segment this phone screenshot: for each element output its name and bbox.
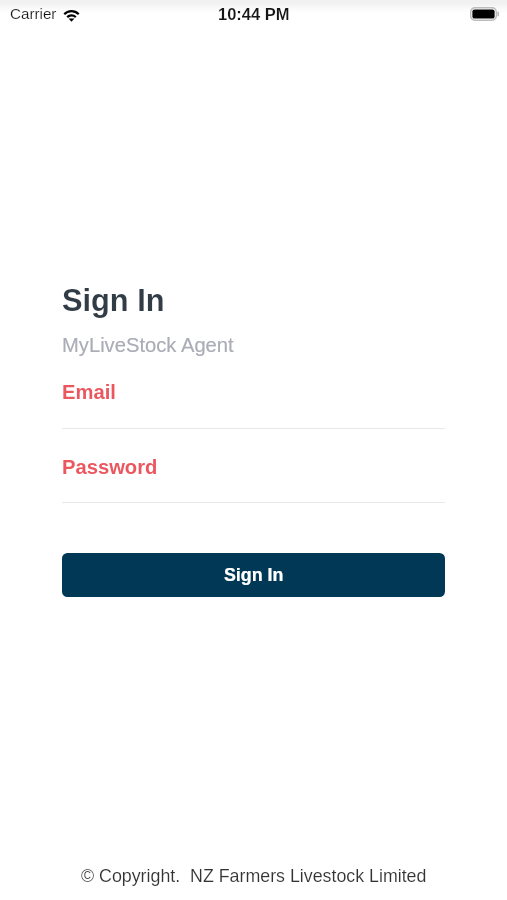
staticText: Password [62, 456, 158, 479]
other: Wi-Fi signal [62, 7, 81, 21]
button[interactable]: Email [62, 381, 445, 429]
other: Battery full [470, 7, 500, 21]
staticText: Email [62, 381, 116, 404]
staticText: Sign In [224, 565, 284, 585]
staticText: © Copyright. NZ Farmers Livestock Limite… [81, 866, 427, 886]
staticText: 10:44 PM [218, 5, 290, 23]
button[interactable]: Password [62, 456, 445, 503]
staticText: Carrier [10, 5, 57, 22]
button[interactable]: Sign In [62, 553, 445, 597]
staticText: MyLiveStock Agent [62, 334, 234, 357]
staticText: Sign In [62, 283, 165, 317]
